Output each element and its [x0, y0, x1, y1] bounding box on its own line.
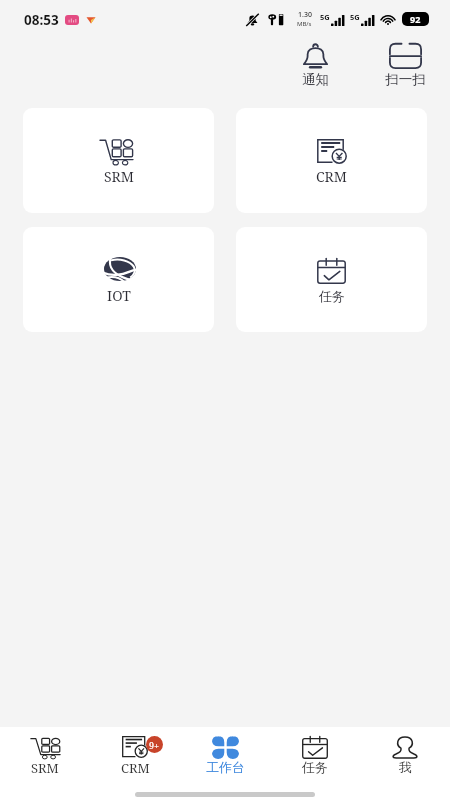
button[interactable]: 工作台 — [180, 727, 270, 775]
button[interactable]: 任务 — [270, 727, 360, 775]
button[interactable]: 任务 — [236, 227, 427, 332]
staticText: 通知 — [302, 71, 329, 86]
button[interactable]: 9+ — [90, 727, 180, 777]
staticText: SRM — [104, 167, 134, 186]
staticText: IOT — [107, 286, 131, 305]
staticText: 08:53 — [24, 11, 59, 29]
staticText: SRM — [31, 759, 59, 777]
button[interactable]: SRM — [0, 727, 90, 777]
staticText: MB/s — [297, 20, 312, 28]
staticText: 9+ — [149, 739, 160, 751]
button[interactable]: CRM — [236, 108, 427, 213]
staticText: 任务 — [302, 759, 328, 775]
staticText: CRM — [316, 167, 347, 186]
staticText: 任务 — [319, 288, 345, 304]
staticText: 扫一扫 — [385, 71, 426, 86]
staticText: 我 — [399, 759, 412, 775]
button[interactable]: SRM — [23, 108, 214, 213]
staticText: 92 — [410, 13, 421, 25]
button[interactable]: 通知 — [283, 36, 347, 86]
button[interactable]: 扫一扫 — [373, 36, 437, 86]
staticText: CRM — [121, 759, 150, 777]
staticText: 5G — [350, 12, 360, 22]
staticText: 5G — [320, 12, 330, 22]
staticText: 1.30 — [298, 10, 312, 20]
button[interactable]: IOT — [23, 227, 214, 332]
staticText: 工作台 — [206, 759, 245, 775]
button[interactable]: 我 — [360, 727, 450, 775]
